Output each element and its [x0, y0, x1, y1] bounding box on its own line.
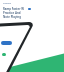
- staticText: Practice And: [3, 11, 21, 15]
- staticText: LEARN: [3, 2, 12, 5]
- staticText: Note Playing: [3, 15, 21, 19]
- button[interactable]: Tag: [2, 53, 6, 56]
- staticText: Ramp Faster W: [3, 7, 24, 11]
- button[interactable]: Primary action: [1, 41, 12, 45]
- button[interactable]: Badge: [28, 8, 31, 10]
